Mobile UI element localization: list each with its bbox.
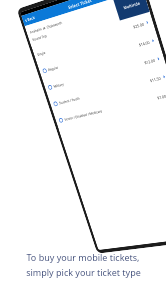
staticText: simply pick your ticket type	[26, 266, 141, 278]
button[interactable]: Military	[42, 48, 166, 96]
button[interactable]: Senior / Disabled / Medicare	[53, 84, 166, 129]
staticText: $11.50	[149, 76, 161, 83]
staticText: Military	[53, 82, 64, 89]
staticText: Back	[27, 15, 36, 22]
staticText: Regular	[47, 65, 60, 72]
staticText: Round Trip	[32, 33, 48, 42]
button[interactable]: Regular	[37, 30, 161, 80]
button[interactable]: Single	[31, 12, 155, 63]
staticText: To buy your mobile tickets,	[26, 251, 140, 263]
staticText: $25.00	[132, 21, 145, 30]
staticText: Single	[37, 50, 46, 57]
staticText: $7.00	[156, 93, 166, 100]
staticText: Student / Youth	[58, 95, 81, 105]
button[interactable]: Student / Youth	[48, 66, 166, 113]
staticText: $14.00	[138, 40, 150, 47]
staticText: Multiride	[123, 0, 141, 10]
staticText: Select Ticket	[67, 0, 93, 10]
staticText: Anaheim ⇄ Chatsworth	[29, 20, 63, 35]
staticText: $12.00	[144, 58, 156, 65]
staticText: Senior / Disabled / Medicare	[64, 108, 103, 122]
button[interactable]: Multiride	[113, 0, 150, 20]
button[interactable]: Back	[24, 15, 36, 23]
